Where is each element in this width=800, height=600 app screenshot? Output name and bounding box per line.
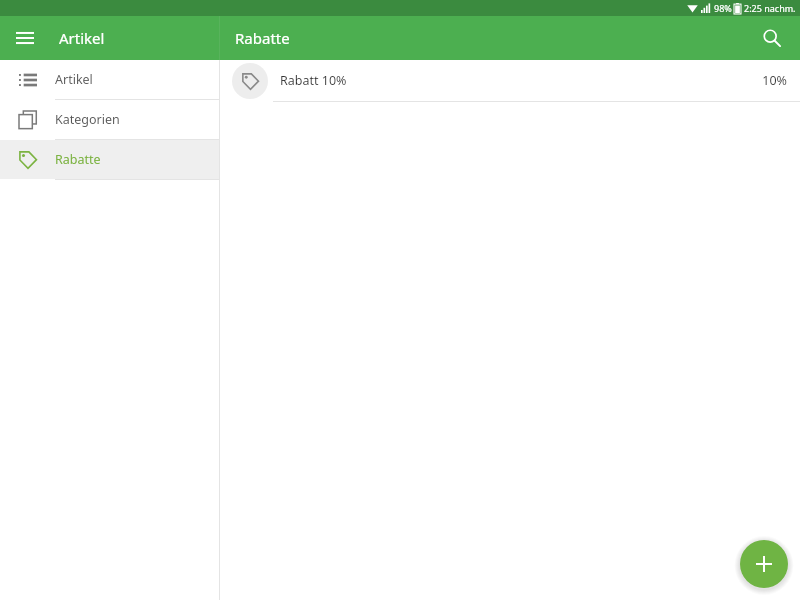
staticText: Kategorien — [55, 111, 120, 128]
button[interactable]: Open navigation drawer — [10, 23, 40, 53]
staticText: 2:25 nachm. — [744, 2, 796, 14]
staticText: Artikel — [59, 28, 105, 48]
staticText: Rabatte — [55, 151, 101, 168]
button[interactable]: Kategorien — [0, 100, 219, 139]
button[interactable]: Rabatte — [0, 140, 219, 179]
staticText: Artikel — [55, 71, 93, 88]
staticText: 98% — [714, 2, 732, 14]
button[interactable]: Add discount — [740, 540, 788, 588]
button[interactable]: Artikel — [0, 60, 219, 99]
button[interactable]: Rabatt 10% — [220, 60, 800, 101]
staticText: 10% — [762, 72, 787, 89]
staticText: Rabatte — [235, 28, 290, 48]
staticText: Rabatt 10% — [280, 72, 347, 89]
button[interactable]: Search — [750, 16, 794, 60]
